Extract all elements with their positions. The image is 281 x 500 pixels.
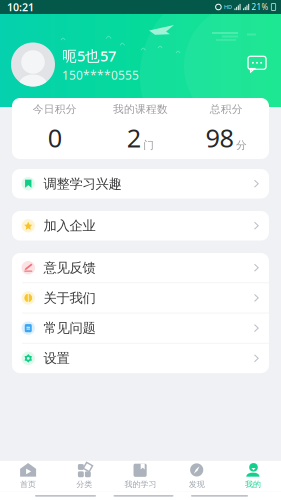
staticText: 分 (236, 139, 247, 152)
staticText: 加入企业 (43, 218, 95, 234)
staticText: 10:21 (7, 0, 34, 14)
staticText: 我的学习 (124, 479, 156, 489)
button[interactable]: 我的学习 (112, 461, 169, 492)
staticText: 今日积分 (33, 103, 77, 116)
button[interactable]: 关于我们 (12, 283, 269, 313)
staticText: 我的 (245, 479, 261, 489)
staticText: 首页 (20, 479, 36, 489)
button[interactable]: 意见反馈 (12, 253, 269, 282)
staticText: 常见问题 (43, 320, 95, 336)
staticText: 门 (143, 139, 154, 152)
staticText: 分类 (76, 479, 92, 489)
staticText: 关于我们 (43, 290, 95, 306)
button[interactable]: 加入企业 (12, 211, 269, 240)
staticText: 我的课程数 (113, 103, 168, 116)
staticText: 98 (205, 121, 233, 154)
staticText: HD (224, 3, 232, 11)
staticText: 150****0555 (62, 67, 139, 83)
button[interactable]: 调整学习兴趣 (12, 169, 269, 198)
button[interactable]: 常见问题 (12, 313, 269, 343)
button[interactable]: 我的 (225, 461, 281, 492)
staticText: 21% (252, 2, 269, 12)
staticText: 呃5也57 (62, 46, 116, 65)
staticText: 总积分 (210, 103, 243, 116)
staticText: 2 (127, 121, 141, 154)
button[interactable]: 发现 (169, 461, 225, 492)
button[interactable]: 分类 (56, 461, 112, 492)
staticText: 发现 (189, 479, 205, 489)
button[interactable]: 首页 (0, 461, 56, 492)
button[interactable]: 设置 (12, 344, 269, 373)
staticText: 设置 (43, 350, 69, 367)
button[interactable]: Messages (246, 55, 268, 73)
staticText: 调整学习兴趣 (43, 176, 121, 192)
staticText: 意见反馈 (43, 260, 95, 276)
staticText: 0 (48, 121, 62, 154)
